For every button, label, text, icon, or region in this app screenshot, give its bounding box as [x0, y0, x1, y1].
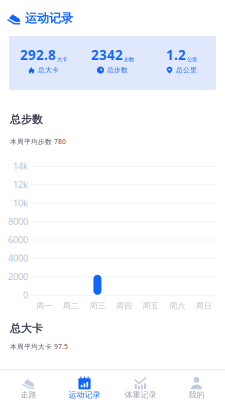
staticText: 周日: [196, 301, 212, 311]
staticText: 总大卡: [10, 322, 43, 335]
staticText: 周二: [63, 301, 79, 311]
staticText: 1.2: [166, 46, 186, 64]
staticText: 周三: [89, 301, 105, 311]
staticText: 体重记录: [124, 390, 156, 400]
staticText: 本周平均步数 780: [10, 137, 66, 146]
staticText: 公里: [187, 56, 197, 63]
staticText: 周五: [143, 301, 159, 311]
staticText: 周四: [116, 301, 132, 311]
staticText: 12k: [13, 178, 28, 191]
button[interactable]: 我的: [168, 371, 224, 400]
staticText: 292.8: [20, 46, 56, 64]
staticText: 4000: [8, 252, 28, 264]
button[interactable]: 运动记录: [56, 371, 112, 400]
staticText: 14k: [13, 160, 28, 172]
staticText: 0: [23, 289, 28, 301]
staticText: 总公里: [176, 66, 197, 74]
staticText: 走路: [20, 390, 36, 400]
staticText: 大卡: [57, 56, 67, 63]
staticText: 2342: [91, 46, 123, 64]
staticText: 本周平均大卡 97.5: [10, 342, 68, 351]
staticText: 总步数: [10, 113, 43, 126]
staticText: 总步数: [107, 66, 128, 74]
staticText: 运动记录: [25, 11, 73, 26]
staticText: 我的: [188, 390, 204, 400]
button[interactable]: 运动记录: [7, 11, 73, 26]
staticText: 周六: [169, 301, 185, 311]
staticText: 6000: [8, 233, 28, 246]
staticText: 10k: [13, 197, 28, 209]
staticText: 总大卡: [38, 66, 59, 74]
button[interactable]: 体重记录: [112, 371, 168, 400]
staticText: 2000: [8, 270, 28, 283]
button[interactable]: 走路: [0, 371, 56, 400]
staticText: 8000: [8, 215, 28, 227]
staticText: 周一: [36, 301, 52, 311]
staticText: 运动记录: [68, 390, 100, 400]
staticText: 步数: [124, 56, 134, 63]
